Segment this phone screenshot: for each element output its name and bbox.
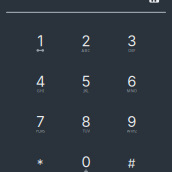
staticText: * (37, 156, 44, 172)
staticText: GHI (37, 88, 44, 93)
button[interactable]: 8 T U V (63, 112, 109, 152)
staticText: MNO (127, 88, 137, 93)
staticText: 9 (127, 113, 136, 130)
button[interactable]: 9 W X Y Z (109, 112, 154, 152)
button[interactable]: 7 P Q R S (17, 112, 63, 152)
button[interactable]: 5 J K L (63, 71, 109, 112)
button[interactable]: 6 M N O (109, 71, 154, 112)
button[interactable]: 0 Plus (63, 152, 109, 172)
staticText: 3 (127, 32, 136, 50)
button[interactable]: Pound (109, 152, 154, 172)
button[interactable]: 3 D E F (109, 31, 154, 71)
staticText: JKL (83, 88, 88, 93)
button[interactable]: Delete (149, 0, 159, 3)
staticText: DEF (128, 48, 135, 53)
staticText: 2 (81, 32, 90, 50)
staticText: PQRS (36, 128, 45, 134)
staticText: 8 (81, 113, 90, 130)
button[interactable]: 2 A B C (63, 31, 109, 71)
staticText: 5 (81, 72, 90, 90)
staticText: 6 (127, 72, 136, 90)
staticText: 4 (36, 72, 45, 90)
button[interactable]: 4 G H I (17, 71, 63, 112)
button[interactable]: 1 (17, 31, 63, 71)
staticText: # (128, 156, 136, 170)
staticText: WXYZ (127, 128, 137, 134)
staticText: 0 (81, 153, 90, 171)
staticText: 1 (37, 32, 43, 50)
staticText: 7 (36, 113, 44, 130)
staticText: ABC (81, 48, 90, 53)
staticText: TUV (82, 128, 89, 134)
button[interactable]: Star (17, 152, 63, 172)
